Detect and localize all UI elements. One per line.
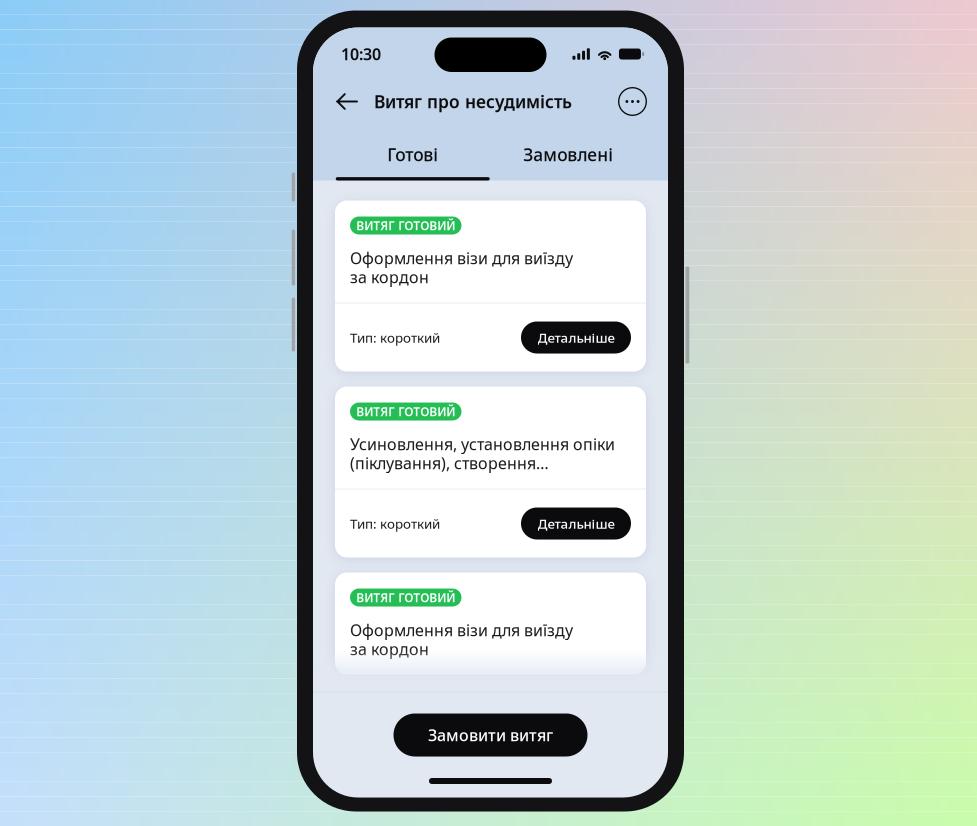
staticText: Оформлення візи для виїзду: [350, 247, 573, 269]
staticText: (піклування), створення…: [350, 452, 549, 474]
staticText: ВИТЯГ ГОТОВИЙ: [356, 589, 455, 605]
button[interactable]: More options: [618, 87, 647, 116]
button[interactable]: Детальніше: [521, 507, 631, 539]
staticText: за кордон: [350, 266, 429, 288]
button[interactable]: Замовити витяг: [393, 713, 587, 756]
staticText: Замовити витяг: [428, 724, 553, 746]
staticText: Витяг про несудимість: [374, 90, 572, 113]
button[interactable]: Замовлені: [490, 122, 646, 180]
staticText: Оформлення візи для виїзду: [350, 619, 573, 641]
button[interactable]: Детальніше: [521, 321, 631, 353]
staticText: 10:30: [341, 43, 381, 65]
staticText: Детальніше: [537, 329, 614, 346]
button[interactable]: Back: [336, 83, 358, 119]
staticText: Замовлені: [523, 143, 613, 166]
button[interactable]: Готові: [335, 122, 490, 180]
staticText: Тип: короткий: [350, 515, 440, 532]
staticText: Детальніше: [537, 515, 614, 532]
staticText: Усиновлення, установлення опіки: [350, 433, 615, 455]
staticText: ВИТЯГ ГОТОВИЙ: [356, 217, 455, 233]
staticText: за кордон: [350, 638, 429, 660]
staticText: ВИТЯГ ГОТОВИЙ: [356, 403, 455, 419]
staticText: Тип: короткий: [350, 329, 440, 346]
staticText: Готові: [387, 143, 438, 166]
